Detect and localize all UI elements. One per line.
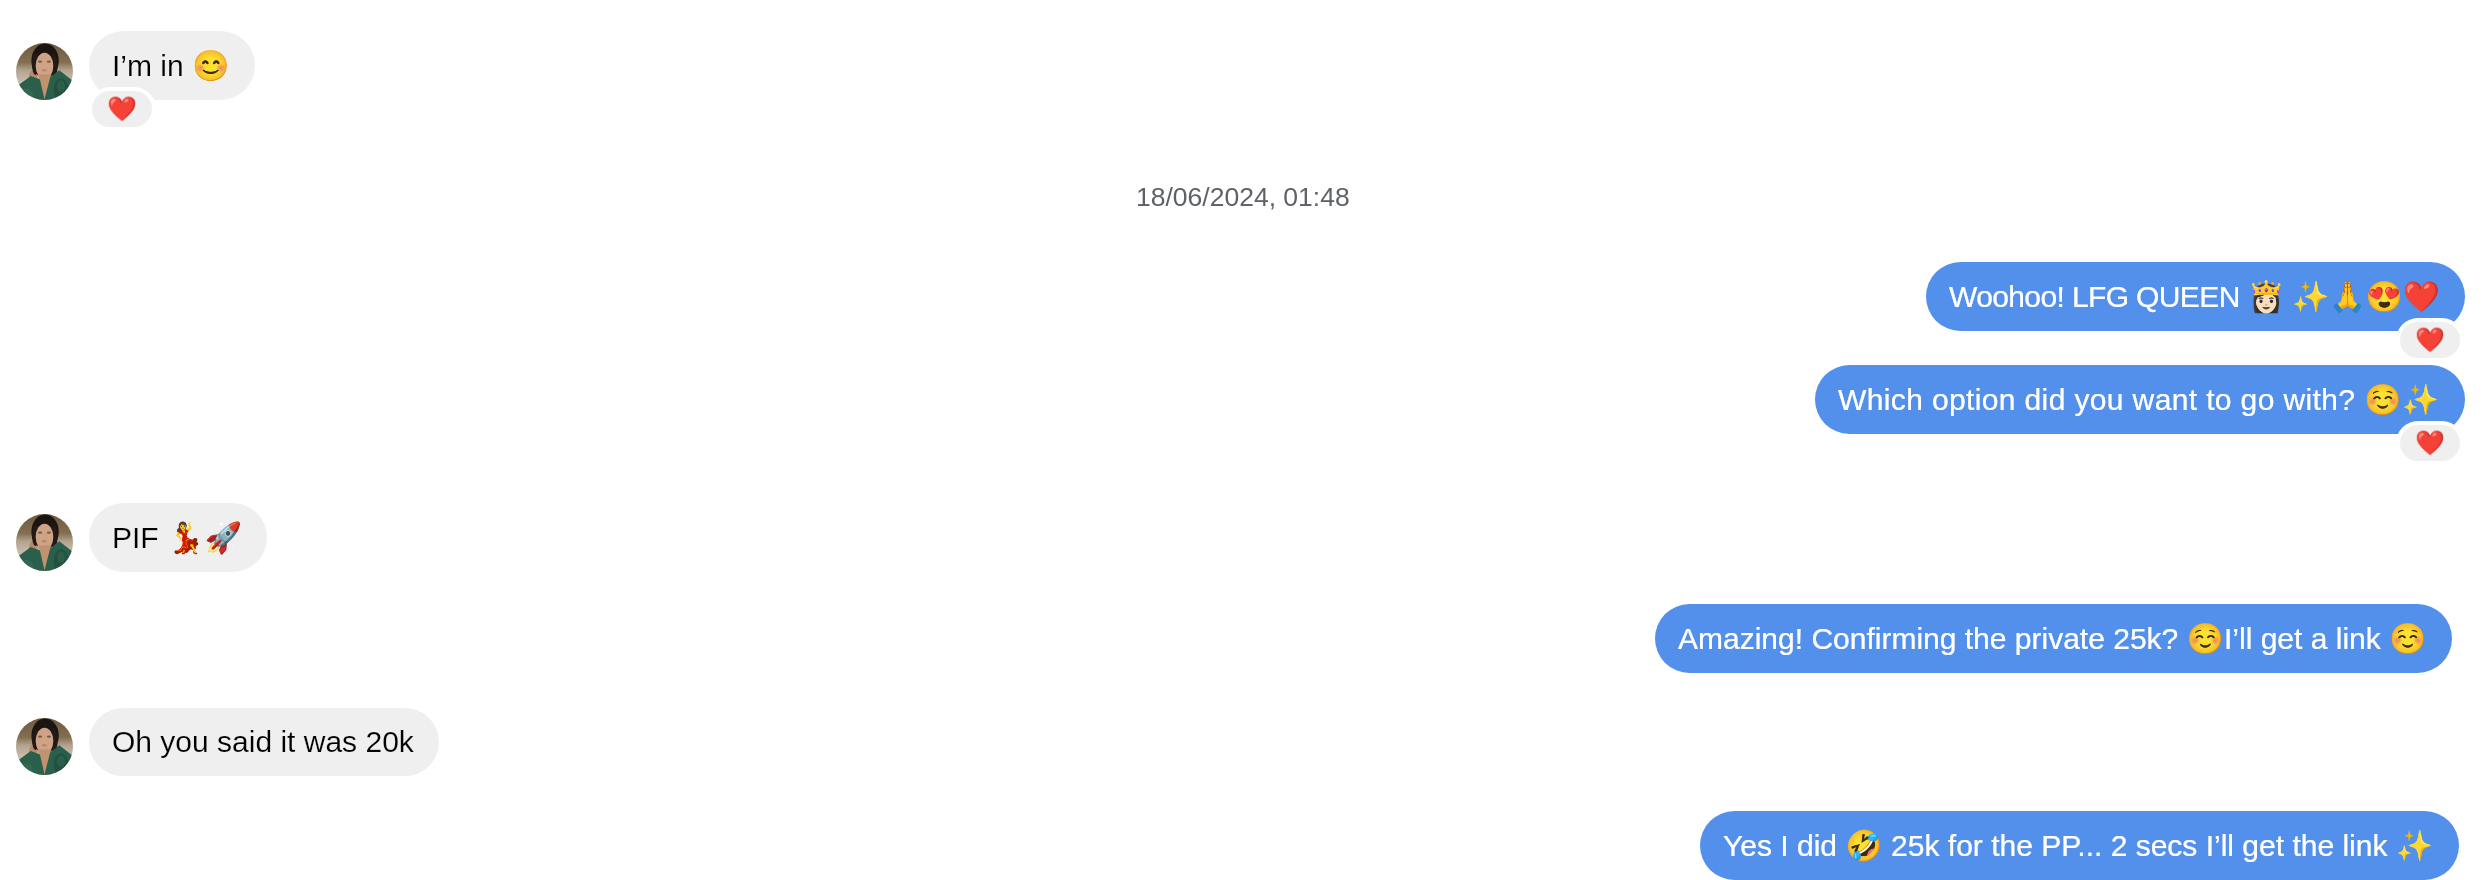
button[interactable]: Love reaction (2400, 322, 2460, 358)
staticText: PIF 💃🚀 (112, 520, 242, 555)
staticText: ❤ (107, 95, 137, 123)
staticText: ❤ (2415, 429, 2445, 457)
staticText: Woohoo! LFG QUEEN 👸🏻 ✨🙏😍❤ (1949, 279, 2440, 314)
button[interactable]: Profile photo (16, 718, 73, 775)
button[interactable]: Love reaction (2400, 425, 2460, 461)
button[interactable]: Love reaction (92, 91, 152, 127)
staticText: ❤ (2415, 326, 2445, 354)
button[interactable]: Which option did you want to go with? ☺✨ (1815, 365, 2465, 434)
staticText: Amazing! Confirming the private 25k? ☺I’… (1678, 621, 2427, 656)
staticText: Yes I did 🤣 25k for the PP... 2 secs I’l… (1723, 828, 2434, 863)
staticText: Which option did you want to go with? ☺✨ (1838, 382, 2440, 417)
button[interactable]: Profile photo (16, 514, 73, 571)
button[interactable]: PIF 💃🚀 (89, 503, 267, 572)
button[interactable]: Woohoo! LFG QUEEN 👸🏻 ✨🙏😍❤ (1926, 262, 2465, 331)
staticText: Oh you said it was 20k (112, 725, 414, 759)
button[interactable]: I’m in 😊 (89, 31, 255, 100)
staticText: 18/06/2024, 01:48 (1136, 182, 1350, 212)
button[interactable]: Amazing! Confirming the private 25k? ☺I’… (1655, 604, 2452, 673)
button[interactable]: Oh you said it was 20k (89, 708, 439, 776)
button[interactable]: Yes I did 🤣 25k for the PP... 2 secs I’l… (1700, 811, 2459, 880)
button[interactable]: Profile photo (16, 43, 73, 100)
staticText: I’m in 😊 (112, 48, 230, 83)
